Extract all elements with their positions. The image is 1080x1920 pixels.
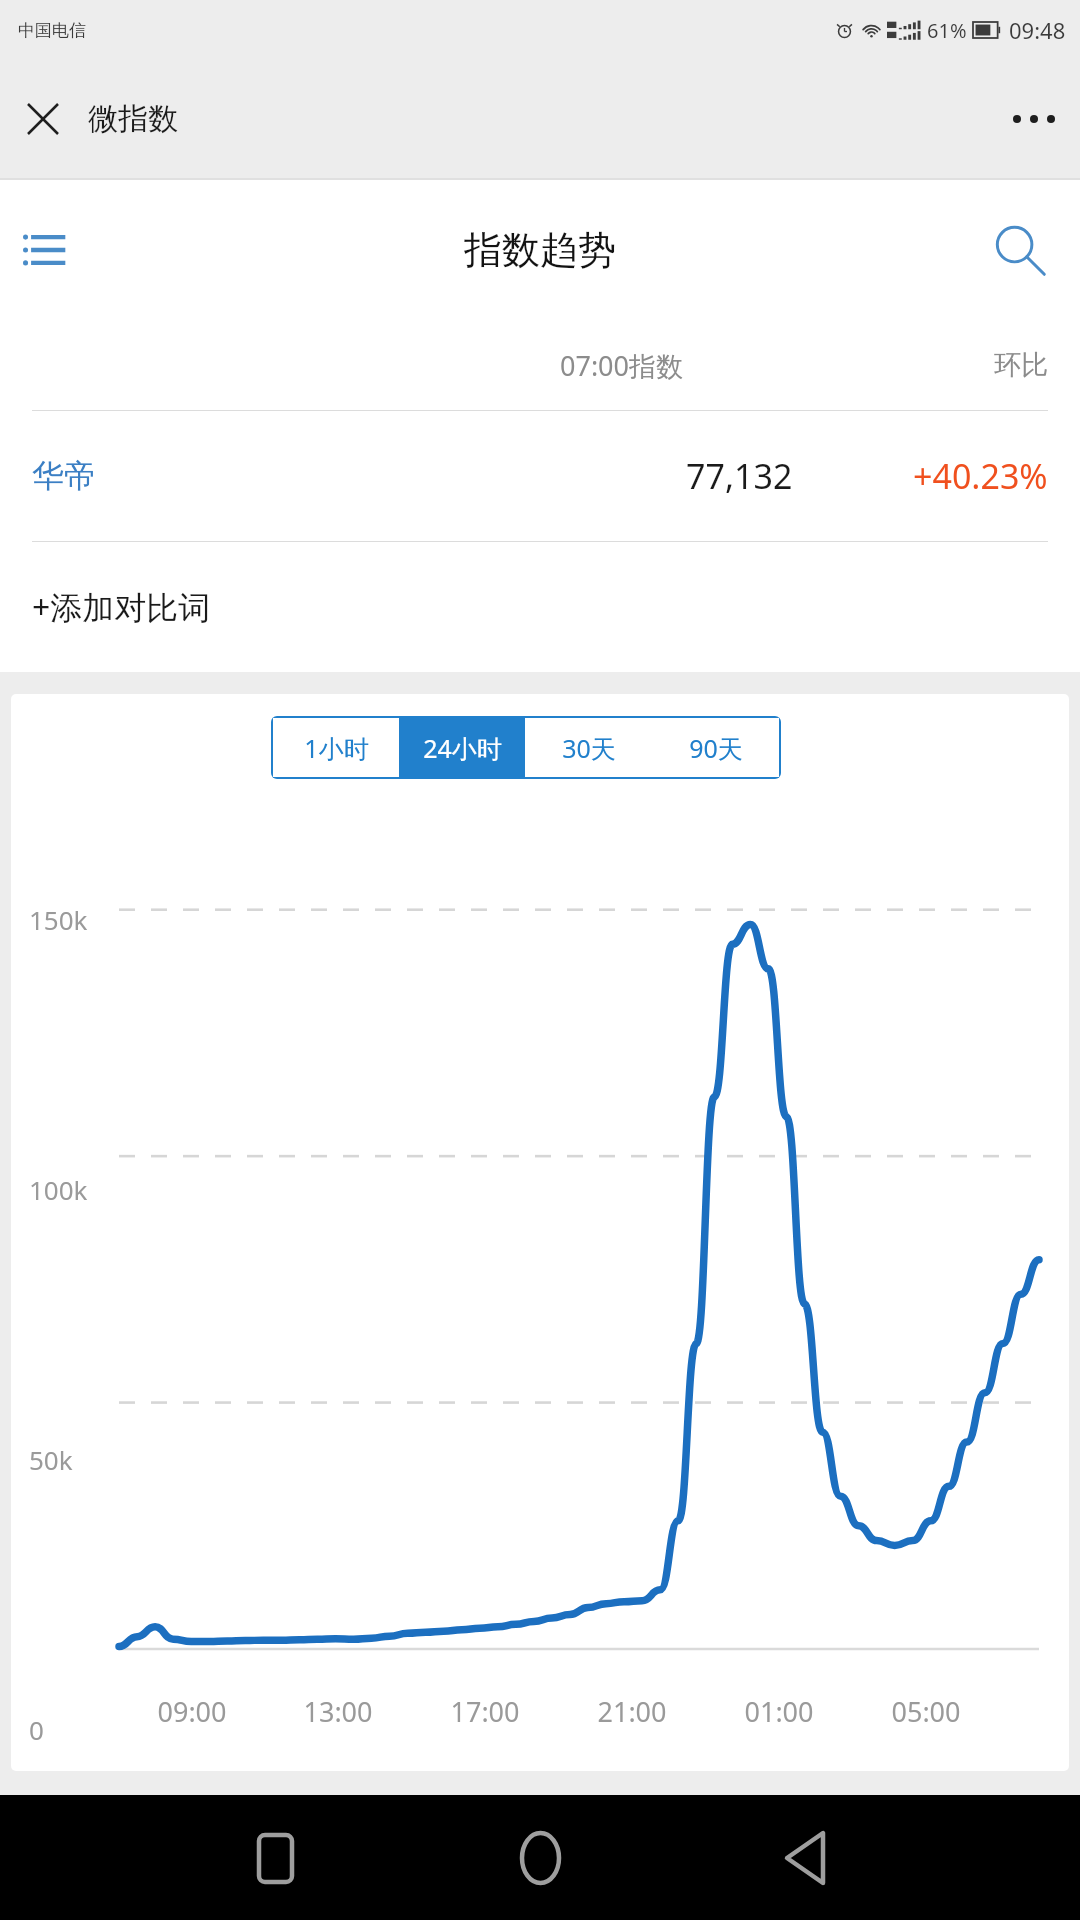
staticText: 150k (29, 902, 88, 937)
staticText: 61% (927, 17, 967, 44)
staticText: 24小时 (423, 731, 502, 765)
staticText: 17:00 (450, 1693, 520, 1730)
staticText: 30天 (562, 731, 616, 765)
staticText: 09:48 (1009, 15, 1066, 45)
button[interactable]: 30天 (525, 718, 652, 777)
staticText: 13:00 (303, 1693, 373, 1730)
staticText: 0 (29, 1712, 44, 1747)
button[interactable]: List view (12, 216, 80, 284)
staticText: 01:00 (744, 1693, 814, 1730)
staticText: 09:00 (157, 1693, 227, 1730)
button[interactable]: Back (757, 1810, 853, 1906)
button[interactable]: 24小时 (399, 718, 525, 777)
staticText: 环比 (994, 348, 1048, 382)
staticText: 77,132 (686, 453, 793, 499)
button[interactable]: 90天 (652, 718, 779, 777)
button[interactable]: Close (14, 90, 72, 148)
button[interactable]: Recent apps (227, 1810, 323, 1906)
staticText: 05:00 (891, 1693, 961, 1730)
staticText: 1小时 (304, 731, 369, 765)
button[interactable]: 华帝 (0, 411, 1080, 541)
staticText: 90天 (689, 731, 743, 765)
staticText: 华帝 (32, 456, 96, 496)
staticText: 指数趋势 (464, 226, 616, 274)
button[interactable]: Search (982, 212, 1058, 288)
staticText: 50k (29, 1442, 73, 1477)
button[interactable]: +添加对比词 (32, 585, 211, 629)
button[interactable]: Home (492, 1810, 588, 1906)
button[interactable]: More options (1002, 87, 1066, 151)
button[interactable]: 1小时 (273, 718, 399, 777)
staticText: +40.23% (913, 453, 1048, 499)
staticText: 微指数 (88, 100, 178, 138)
staticText: 21:00 (597, 1693, 667, 1730)
staticText: 100k (29, 1172, 88, 1207)
staticText: 07:00指数 (560, 347, 684, 384)
staticText: 中国电信 (18, 20, 86, 41)
